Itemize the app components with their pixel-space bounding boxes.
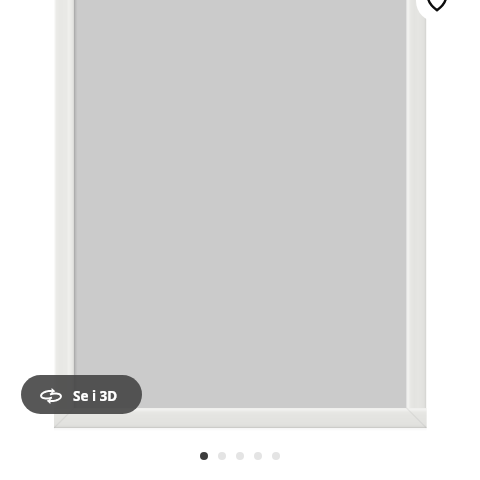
button[interactable]: Bilde 4 — [254, 452, 262, 460]
button[interactable]: Bilde 2 — [218, 452, 226, 460]
button[interactable]: Bilde 5 — [272, 452, 280, 460]
button[interactable]: Bilde 1 — [200, 452, 208, 460]
button[interactable]: Bilde 3 — [236, 452, 244, 460]
staticText: Se i 3D — [73, 387, 118, 405]
button[interactable]: Se i 3D — [21, 375, 142, 414]
button[interactable]: Legg til i favoritter — [416, 0, 458, 22]
